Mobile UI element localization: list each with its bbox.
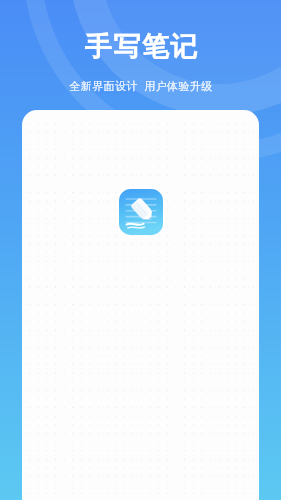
staticText: 手写笔记 <box>84 30 198 64</box>
staticText: 全新界面设计 用户体验升级 <box>69 78 213 93</box>
button[interactable]: 手写笔记应用图标 <box>119 189 163 235</box>
button[interactable]: 手写笔记应用图标 <box>22 110 259 500</box>
